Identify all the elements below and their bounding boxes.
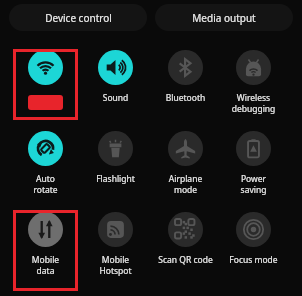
staticText: Bluetooth: [153, 92, 218, 104]
button[interactable]: Mobile Hotspot: [83, 212, 148, 276]
staticText: Auto rotate: [13, 173, 78, 195]
staticText: Device control: [45, 11, 112, 25]
button[interactable]: Focus mode: [221, 212, 286, 266]
button[interactable]: Scan QR code: [153, 212, 218, 266]
button[interactable]: Power saving: [221, 131, 286, 195]
button[interactable]: Sound: [83, 50, 148, 104]
button[interactable]: Flashlight: [83, 131, 148, 185]
staticText: Mobile Hotspot: [83, 254, 148, 276]
staticText: Media output: [192, 11, 256, 25]
button[interactable]: Bluetooth: [153, 50, 218, 104]
button[interactable]: Airplane mode: [153, 131, 218, 195]
button[interactable]: Device control: [9, 4, 147, 31]
staticText: Focus mode: [221, 254, 286, 266]
staticText: Sound: [83, 92, 148, 104]
staticText: Flashlight: [83, 173, 148, 185]
button[interactable]: Media output: [155, 4, 293, 31]
button[interactable]: Mobile data: [13, 212, 78, 276]
staticText: Wireless debugging: [221, 92, 286, 114]
button[interactable]: Wi-Fi: [13, 50, 78, 92]
staticText: Power saving: [221, 173, 286, 195]
staticText: Mobile data: [13, 254, 78, 276]
staticText: Scan QR code: [153, 254, 218, 266]
button[interactable]: Auto rotate: [13, 131, 78, 195]
button[interactable]: Wireless debugging: [221, 50, 286, 114]
staticText: Airplane mode: [153, 173, 218, 195]
